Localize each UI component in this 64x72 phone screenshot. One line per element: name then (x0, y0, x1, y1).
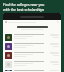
button[interactable]: Compare (3, 60, 61, 69)
staticText: Find the colleges near you (3, 2, 45, 6)
staticText: with the best scholarships (3, 7, 45, 11)
button[interactable]: Compare (3, 51, 61, 60)
button[interactable]: Compare (3, 69, 61, 72)
button[interactable]: Menu (5, 21, 7, 23)
button[interactable]: Compare (3, 42, 61, 51)
button[interactable]: Compare (3, 33, 61, 42)
